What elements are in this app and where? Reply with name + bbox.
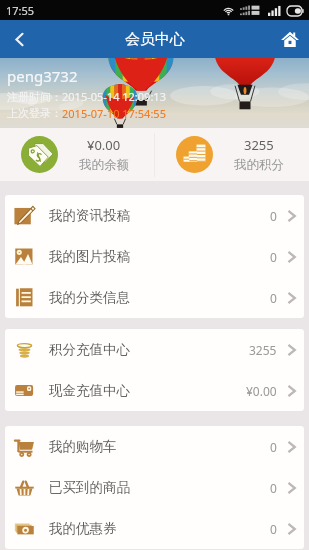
button[interactable]: 我的资讯投稿 [5,195,304,236]
staticText: 0 [270,480,277,496]
staticText: 0 [270,290,277,306]
staticText: 我的资讯投稿 [49,207,130,224]
staticText: 我的购物车 [49,438,117,455]
staticText: 我的积分 [234,157,284,173]
staticText: 我的优惠券 [49,520,117,537]
staticText: 0 [270,439,277,455]
staticText: 注册时间：2015-05-14 12:09:13 [7,89,166,104]
staticText: 我的分类信息 [49,289,130,306]
staticText: 0 [270,208,277,224]
staticText: 上次登录： [7,106,62,120]
button[interactable]: 我的优惠券 [5,508,304,549]
staticText: 0 [270,249,277,265]
button[interactable]: ¥0.00 [0,128,154,181]
staticText: ¥0.00 [87,136,121,154]
staticText: 2015-07-10 17:54:55 [62,106,166,121]
button[interactable]: 已买到的商品 [5,467,304,508]
staticText: 已买到的商品 [49,479,130,496]
staticText: 现金充值中心 [49,382,130,399]
staticText: 我的余额 [79,157,129,173]
button[interactable]: 3255 [155,128,309,181]
staticText: 积分充值中心 [49,341,130,358]
staticText: 3255 [249,342,277,358]
staticText: 会员中心 [125,30,185,49]
staticText: peng3732 [7,66,78,86]
button[interactable]: 积分充值中心 [5,329,304,370]
staticText: 我的图片投稿 [49,248,130,265]
staticText: 0 [270,521,277,537]
button[interactable]: 我的图片投稿 [5,236,304,277]
button[interactable]: Home [271,20,309,58]
button[interactable]: Back [0,20,38,58]
staticText: 17:55 [6,3,35,18]
button[interactable]: 我的分类信息 [5,277,304,318]
button[interactable]: 现金充值中心 [5,370,304,411]
staticText: ¥0.00 [246,383,277,399]
button[interactable]: 我的购物车 [5,426,304,467]
staticText: 3255 [244,136,274,154]
